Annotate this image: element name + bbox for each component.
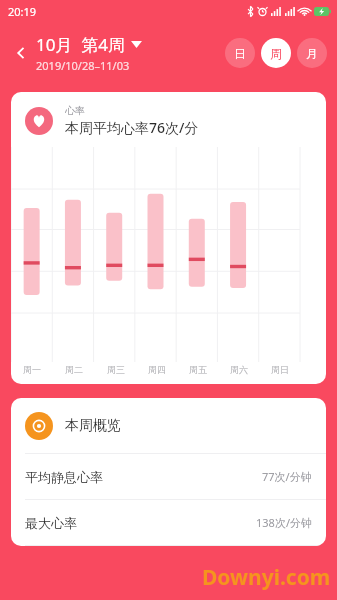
staticText: 最大心率 bbox=[25, 515, 77, 531]
staticText: 10月 第4周 bbox=[36, 33, 126, 56]
staticText: 本周平均心率76次/分 bbox=[65, 118, 199, 137]
staticText: Downyi.com bbox=[202, 563, 331, 592]
staticText: 77次/分钟 bbox=[262, 469, 312, 484]
button[interactable]: 平均静息心率 bbox=[11, 454, 326, 499]
staticText: 2019/10/28–11/03 bbox=[36, 58, 130, 73]
staticText: 平均静息心率 bbox=[25, 469, 103, 485]
staticText: 周六 bbox=[230, 364, 248, 375]
staticText: 周一 bbox=[23, 364, 41, 375]
staticText: 周五 bbox=[189, 364, 207, 375]
button[interactable]: 最大心率 bbox=[11, 500, 326, 545]
button[interactable]: 心率 bbox=[11, 92, 326, 384]
staticText: 周二 bbox=[65, 364, 83, 375]
staticText: 周 bbox=[270, 46, 282, 61]
staticText: 周日 bbox=[271, 364, 289, 375]
staticText: 心率 bbox=[65, 104, 85, 117]
staticText: 月 bbox=[306, 46, 318, 61]
button[interactable]: 本周概览 bbox=[25, 412, 326, 440]
staticText: 周四 bbox=[148, 364, 166, 375]
staticText: 本周概览 bbox=[65, 417, 121, 435]
button[interactable]: 日 bbox=[225, 38, 255, 68]
button[interactable]: 周 bbox=[261, 38, 291, 68]
button[interactable]: 月 bbox=[297, 38, 327, 68]
staticText: 日 bbox=[234, 46, 246, 61]
staticText: 138次/分钟 bbox=[256, 515, 312, 530]
button[interactable]: Back bbox=[10, 33, 142, 73]
staticText: 20:19 bbox=[8, 4, 37, 19]
other: Back bbox=[10, 42, 32, 64]
staticText: 周三 bbox=[107, 364, 125, 375]
